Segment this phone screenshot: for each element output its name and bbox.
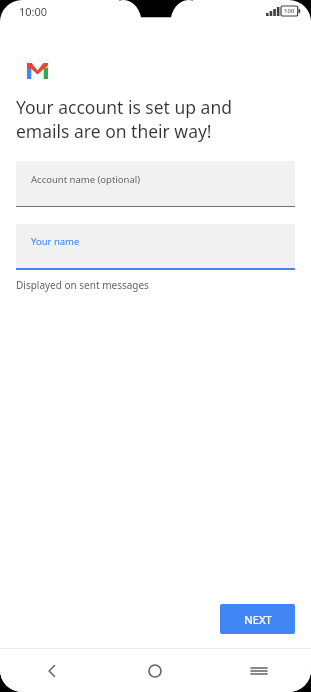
staticText: 10:00 bbox=[19, 4, 48, 19]
staticText: Your name bbox=[31, 235, 80, 248]
button[interactable]: Account name (optional) bbox=[16, 161, 295, 207]
staticText: Displayed on sent messages bbox=[16, 278, 149, 292]
button[interactable]: Your name bbox=[16, 224, 295, 270]
staticText: Your account is set up and emails are on… bbox=[16, 95, 233, 143]
staticText: NEXT bbox=[244, 612, 272, 627]
staticText: 100 bbox=[284, 7, 295, 15]
button[interactable]: Recent apps bbox=[207, 649, 311, 692]
staticText: Account name (optional) bbox=[31, 173, 141, 186]
button[interactable]: Home bbox=[103, 649, 207, 692]
button[interactable]: NEXT bbox=[220, 604, 295, 634]
button[interactable]: Back bbox=[0, 649, 103, 692]
